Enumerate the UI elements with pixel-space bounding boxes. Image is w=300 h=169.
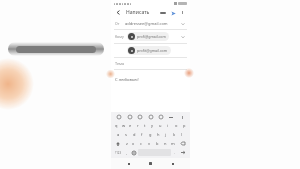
- button[interactable]: o: [172, 121, 180, 130]
- button[interactable]: Запятая: [124, 149, 130, 156]
- button[interactable]: Обзор: [168, 159, 177, 168]
- button[interactable]: t: [141, 121, 148, 130]
- button[interactable]: Удалить: [177, 139, 188, 148]
- staticText: Тема: [115, 61, 125, 66]
- button[interactable]: d: [130, 130, 138, 139]
- staticText: addressee@gmail.com: [125, 21, 168, 26]
- button[interactable]: b: [153, 139, 161, 148]
- staticText: От: [115, 21, 120, 26]
- button[interactable]: n: [161, 139, 169, 148]
- staticText: d: [133, 132, 136, 137]
- button[interactable]: Инструмент 6: [168, 114, 174, 120]
- button[interactable]: Кому: [111, 30, 190, 43]
- staticText: С любовью!: [115, 77, 139, 83]
- button[interactable]: Назад: [124, 159, 133, 168]
- button[interactable]: q: [113, 121, 120, 130]
- button[interactable]: Настройки клавиатуры: [130, 149, 137, 156]
- button[interactable]: Главный экран: [146, 159, 155, 168]
- button[interactable]: v: [145, 139, 153, 148]
- button[interactable]: k: [170, 130, 178, 139]
- button[interactable]: z: [123, 139, 130, 148]
- staticText: u: [159, 123, 162, 128]
- button[interactable]: Цифры и символы: [113, 149, 124, 156]
- button[interactable]: Инструмент 2: [127, 114, 133, 120]
- staticText: r: [137, 123, 139, 128]
- button[interactable]: e: [127, 121, 134, 130]
- staticText: n: [164, 141, 167, 146]
- staticText: x: [132, 141, 135, 146]
- staticText: h: [157, 132, 160, 137]
- button[interactable]: Инструмент 3: [137, 114, 143, 120]
- button[interactable]: profit@gmail.com: [127, 46, 171, 55]
- button[interactable]: p: [180, 121, 188, 130]
- button[interactable]: Прикрепить файл: [158, 8, 168, 18]
- button[interactable]: profit@gmail.com: [111, 44, 190, 57]
- button[interactable]: Инструмент 1: [116, 114, 122, 120]
- button[interactable]: i: [164, 121, 172, 130]
- staticText: profi@gmail.com: [137, 34, 166, 39]
- button[interactable]: Назад: [114, 8, 123, 17]
- button[interactable]: Shift: [113, 139, 123, 148]
- staticText: m: [171, 141, 175, 146]
- button[interactable]: r: [134, 121, 141, 130]
- button[interactable]: Инструмент 5: [158, 114, 164, 120]
- staticText: g: [149, 132, 152, 137]
- button[interactable]: Точка: [172, 149, 178, 156]
- staticText: l: [181, 132, 183, 137]
- staticText: w: [122, 123, 126, 128]
- button[interactable]: Ещё: [178, 8, 187, 17]
- staticText: ,: [126, 150, 128, 155]
- button[interactable]: Развернуть: [179, 33, 186, 40]
- staticText: j: [165, 132, 167, 137]
- staticText: t: [144, 123, 146, 128]
- staticText: b: [156, 141, 159, 146]
- button[interactable]: y: [148, 121, 156, 130]
- button[interactable]: Инструмент 4: [148, 114, 154, 120]
- staticText: q: [115, 123, 118, 128]
- button[interactable]: g: [146, 130, 154, 139]
- button[interactable]: a: [115, 130, 122, 139]
- button[interactable]: s: [122, 130, 130, 139]
- staticText: Кому: [115, 34, 124, 39]
- staticText: e: [129, 123, 132, 128]
- staticText: o: [175, 123, 178, 128]
- button[interactable]: Ввод: [178, 149, 188, 156]
- staticText: profit@gmail.com: [137, 48, 168, 53]
- button[interactable]: m: [169, 139, 177, 148]
- staticText: .: [174, 150, 176, 155]
- button[interactable]: x: [130, 139, 137, 148]
- button[interactable]: f: [138, 130, 146, 139]
- button[interactable]: От: [111, 18, 190, 29]
- button[interactable]: j: [162, 130, 170, 139]
- button[interactable]: Тема: [111, 58, 190, 69]
- button[interactable]: u: [156, 121, 164, 130]
- staticText: v: [148, 141, 151, 146]
- button[interactable]: С любовью!: [111, 70, 190, 112]
- staticText: k: [173, 132, 176, 137]
- staticText: y: [151, 123, 154, 128]
- staticText: z: [126, 141, 128, 146]
- button[interactable]: h: [154, 130, 162, 139]
- button[interactable]: Развернуть: [179, 20, 186, 27]
- staticText: Написать: [126, 9, 150, 16]
- button[interactable]: Отправить: [168, 8, 178, 18]
- staticText: f: [141, 132, 143, 137]
- button[interactable]: c: [137, 139, 145, 148]
- staticText: c: [140, 141, 142, 146]
- button[interactable]: l: [178, 130, 186, 139]
- staticText: i: [167, 123, 169, 128]
- staticText: s: [125, 132, 127, 137]
- button[interactable]: profi@gmail.com: [127, 32, 169, 41]
- button[interactable]: w: [120, 121, 127, 130]
- staticText: p: [183, 123, 186, 128]
- staticText: ?123: [115, 151, 122, 155]
- button[interactable]: Инструмент 7: [179, 114, 185, 120]
- staticText: a: [117, 132, 120, 137]
